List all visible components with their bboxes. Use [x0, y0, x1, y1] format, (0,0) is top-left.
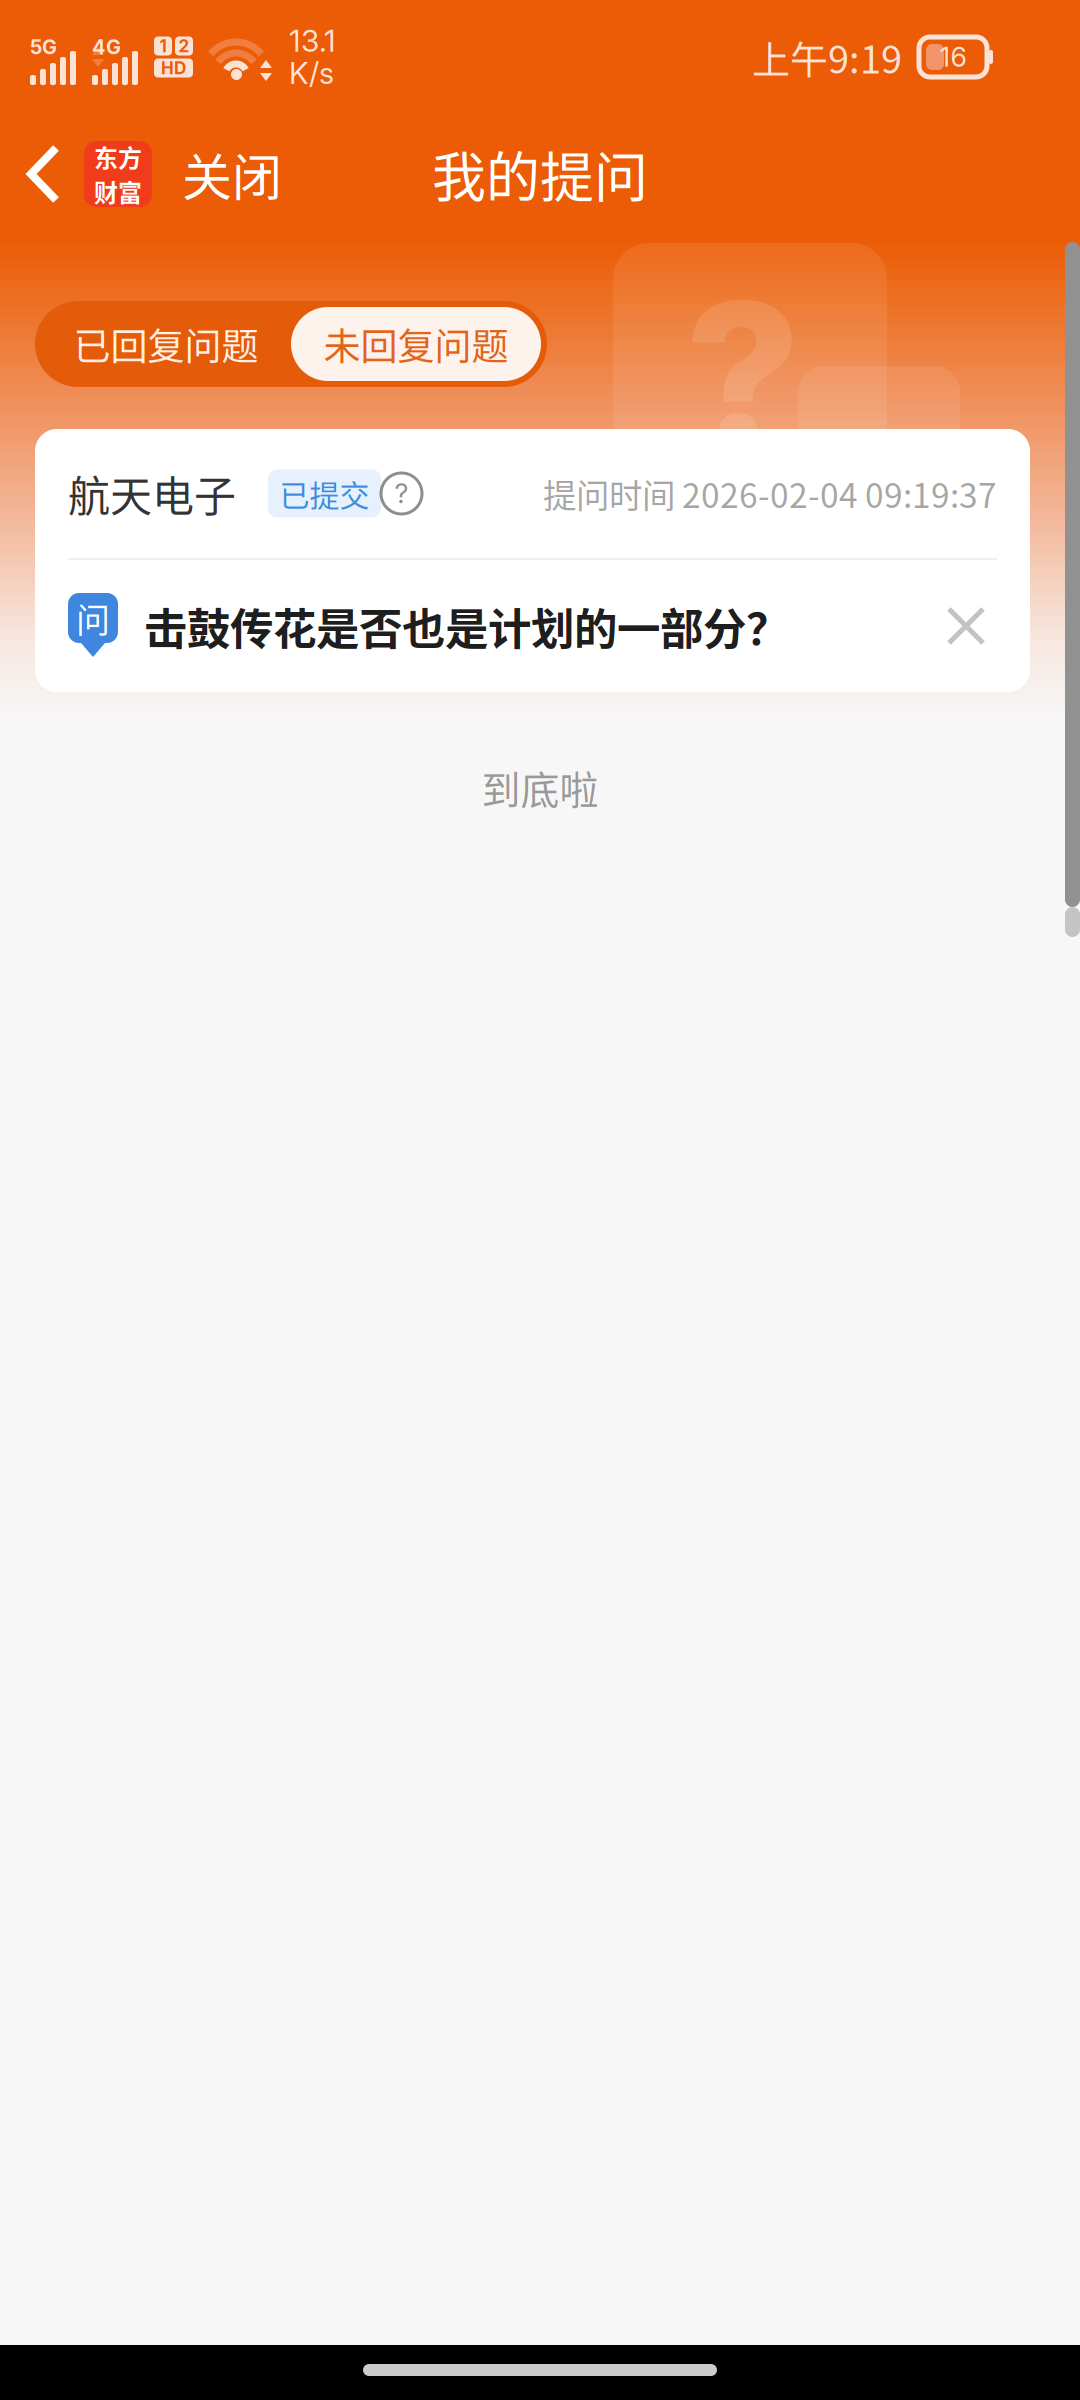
staticText: 已提交 — [279, 472, 369, 515]
button[interactable]: 删除该提问 — [938, 598, 994, 654]
staticText: 东方 — [94, 139, 142, 174]
staticText: 我的提问 — [432, 135, 648, 213]
staticText: 提问时间 2026-02-04 09:19:37 — [543, 469, 997, 518]
staticText: 财富 — [94, 174, 142, 209]
staticText: 13.1 — [289, 23, 336, 59]
staticText: 16 — [939, 41, 966, 73]
staticText: ? — [394, 477, 408, 510]
staticText: 关闭 — [182, 138, 282, 210]
button[interactable]: 未回复问题 — [291, 307, 541, 381]
staticText: 上午9:19 — [752, 29, 902, 84]
staticText: 1 — [159, 36, 166, 56]
staticText: 已回复问题 — [73, 317, 258, 371]
staticText: HD — [161, 58, 186, 78]
staticText: 到底啦 — [481, 759, 598, 815]
button[interactable]: 已回复问题 — [41, 307, 291, 381]
staticText: 击鼓传花是否也是计划的一部分？ — [144, 594, 789, 657]
staticText: 未回复问题 — [323, 317, 508, 371]
staticText: 5G — [30, 35, 57, 59]
staticText: 问 — [76, 593, 110, 643]
staticText: 航天电子 — [68, 463, 236, 524]
staticText: 2 — [178, 36, 189, 56]
staticText: ? — [685, 253, 801, 495]
button[interactable]: 东方 — [0, 114, 306, 234]
staticText: K/s — [289, 55, 334, 91]
staticText: 4G — [92, 35, 121, 59]
